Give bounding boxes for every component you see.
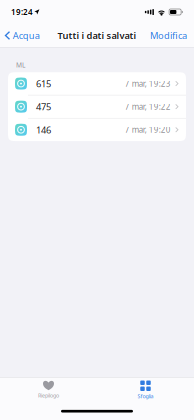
staticText: 7 mar, 19:20 (125, 124, 171, 135)
staticText: Riepilogo (38, 392, 59, 399)
button[interactable]: 615 (8, 72, 186, 95)
staticText: Sfoglia (137, 393, 153, 400)
staticText: 7 mar, 19:22 (125, 101, 171, 112)
button[interactable]: 146 (8, 118, 186, 141)
staticText: 146 (36, 124, 51, 136)
button[interactable]: Riepilogo (0, 377, 97, 405)
staticText: ML (16, 60, 25, 69)
staticText: Tutti i dati salvati (57, 29, 136, 42)
staticText: 19:24 (11, 7, 33, 17)
staticText: 615 (36, 77, 51, 90)
button[interactable]: 475 (8, 95, 186, 118)
staticText: Acqua (13, 29, 40, 42)
button[interactable]: Modifica (147, 25, 194, 46)
staticText: Modifica (150, 29, 187, 42)
staticText: 7 mar, 19:23 (125, 78, 171, 89)
button[interactable]: Acqua (0, 25, 43, 46)
staticText: 475 (36, 100, 51, 113)
button[interactable]: Sfoglia (97, 377, 194, 405)
